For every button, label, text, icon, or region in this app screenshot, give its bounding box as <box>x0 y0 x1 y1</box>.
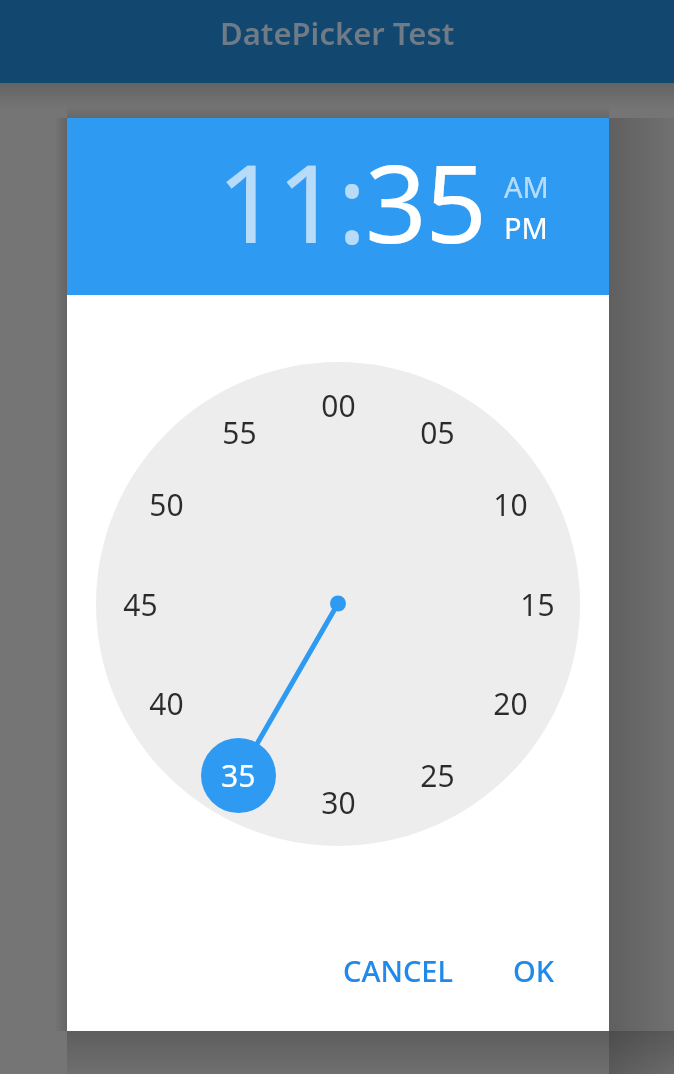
staticText: PM <box>504 208 548 247</box>
button[interactable]: OK <box>487 940 581 1000</box>
staticText: 35 <box>365 128 486 275</box>
staticText: OK <box>513 951 555 990</box>
button[interactable]: 40 <box>126 681 206 725</box>
staticText: AM <box>504 167 549 206</box>
staticText: 45 <box>123 584 158 625</box>
staticText: CANCEL <box>343 951 453 990</box>
staticText: 25 <box>420 755 455 796</box>
button[interactable]: CANCEL <box>333 940 463 1000</box>
button[interactable]: 05 <box>397 410 477 454</box>
button[interactable]: 50 <box>126 482 206 526</box>
staticText: 20 <box>493 683 528 724</box>
button[interactable]: 30 <box>298 780 378 824</box>
staticText: 05 <box>420 412 455 453</box>
button[interactable]: 45 <box>100 582 180 626</box>
staticText: 11: <box>217 128 365 275</box>
staticText: 35 <box>221 755 256 796</box>
staticText: 55 <box>222 412 257 453</box>
button[interactable]: 15 <box>497 582 577 626</box>
button[interactable]: 25 <box>397 753 477 797</box>
staticText: 10 <box>493 484 528 525</box>
button[interactable]: 10 <box>470 482 550 526</box>
button[interactable]: 00 <box>298 383 378 427</box>
button[interactable]: 20 <box>470 681 550 725</box>
staticText: 30 <box>321 782 356 823</box>
staticText: DatePicker Test <box>220 12 455 54</box>
button[interactable]: PM <box>504 208 548 247</box>
button[interactable]: 55 <box>199 410 279 454</box>
staticText: 50 <box>149 484 184 525</box>
button[interactable]: 35 <box>201 738 276 813</box>
staticText: 00 <box>321 385 356 426</box>
staticText: 15 <box>520 584 555 625</box>
staticText: 40 <box>149 683 184 724</box>
button[interactable]: AM <box>504 167 549 206</box>
